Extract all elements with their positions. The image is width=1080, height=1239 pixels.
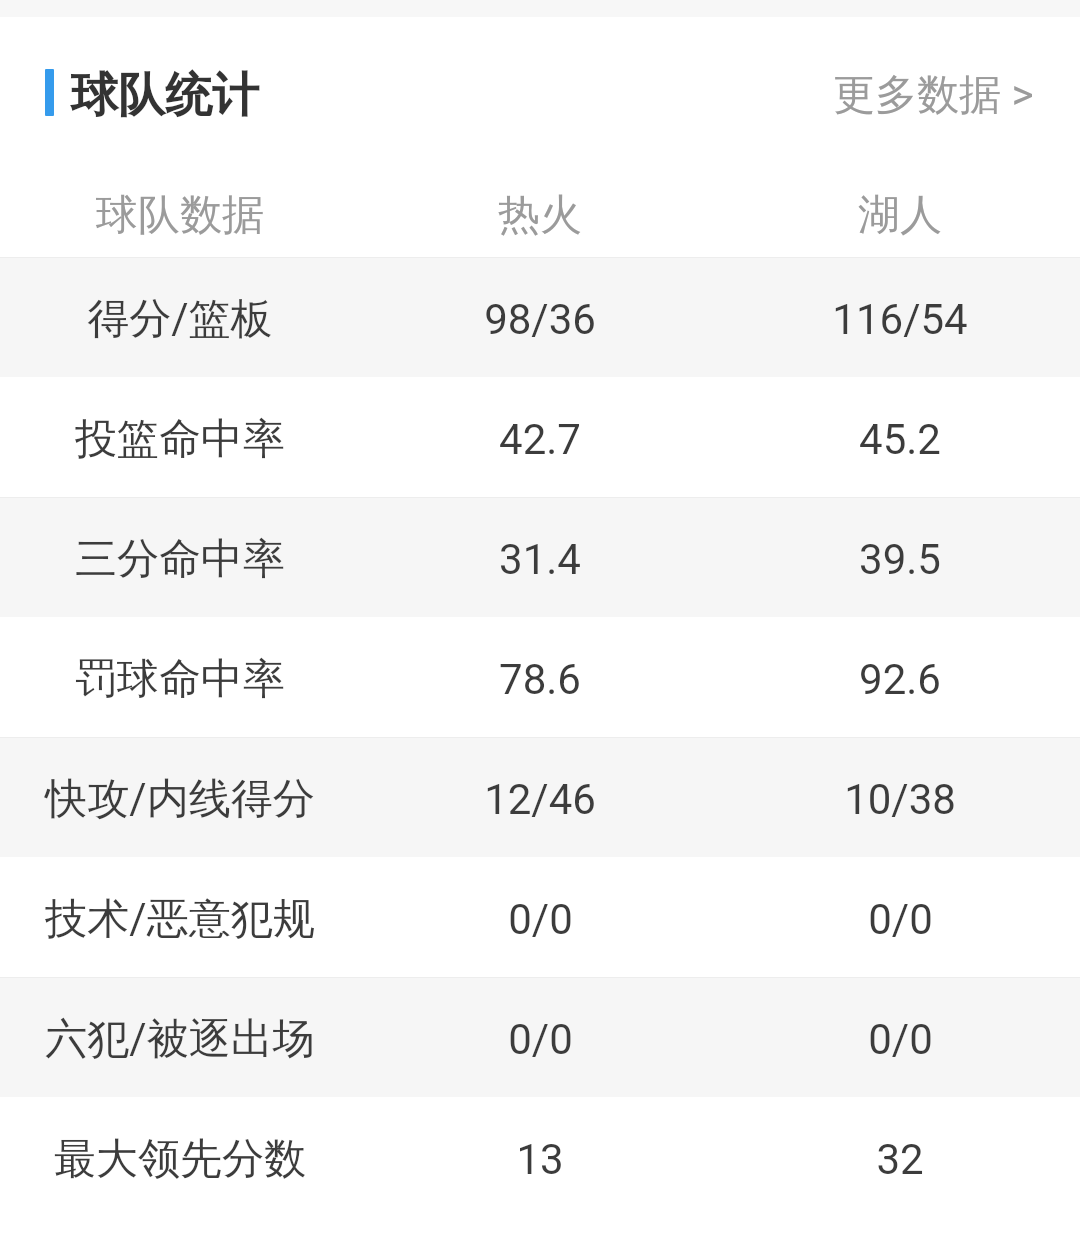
button[interactable]: 球队统计 bbox=[0, 17, 279, 170]
staticText: 湖人 bbox=[858, 189, 942, 242]
staticText: 最大领先分数 bbox=[54, 1133, 306, 1186]
button[interactable]: 快攻/内线得分 bbox=[0, 738, 1080, 857]
button[interactable]: 得分/篮板 bbox=[0, 258, 1080, 377]
staticText: 得分/篮板 bbox=[87, 293, 273, 346]
staticText: 0/0 bbox=[508, 895, 573, 944]
staticText: 三分命中率 bbox=[75, 533, 285, 586]
staticText: 0/0 bbox=[508, 1015, 573, 1064]
staticText: 热火 bbox=[498, 189, 582, 242]
button[interactable]: 三分命中率 bbox=[0, 498, 1080, 617]
staticText: 六犯/被逐出场 bbox=[45, 1013, 315, 1066]
staticText: 116/54 bbox=[832, 295, 968, 344]
staticText: 42.7 bbox=[499, 415, 581, 464]
staticText: 0/0 bbox=[868, 1015, 933, 1064]
staticText: 32 bbox=[876, 1135, 924, 1184]
staticText: 45.2 bbox=[859, 415, 941, 464]
button[interactable]: 技术/恶意犯规 bbox=[0, 857, 1080, 977]
staticText: 92.6 bbox=[859, 655, 941, 704]
button[interactable]: 罚球命中率 bbox=[0, 617, 1080, 737]
staticText: 球队数据 bbox=[96, 189, 264, 242]
staticText: 更多数据 > bbox=[833, 69, 1034, 122]
button[interactable]: 六犯/被逐出场 bbox=[0, 978, 1080, 1097]
button[interactable]: 投篮命中率 bbox=[0, 377, 1080, 497]
button[interactable]: 更多数据 > bbox=[803, 17, 1080, 170]
staticText: 78.6 bbox=[499, 655, 581, 704]
staticText: 39.5 bbox=[859, 535, 941, 584]
staticText: 31.4 bbox=[499, 535, 581, 584]
staticText: 快攻/内线得分 bbox=[45, 773, 315, 826]
staticText: 98/36 bbox=[484, 295, 596, 344]
staticText: 0/0 bbox=[868, 895, 933, 944]
staticText: 13 bbox=[516, 1135, 564, 1184]
staticText: 球队统计 bbox=[71, 66, 259, 125]
staticText: 12/46 bbox=[484, 775, 596, 824]
staticText: 技术/恶意犯规 bbox=[45, 893, 315, 946]
staticText: 投篮命中率 bbox=[75, 413, 285, 466]
button[interactable]: 最大领先分数 bbox=[0, 1097, 1080, 1217]
staticText: 10/38 bbox=[844, 775, 956, 824]
staticText: 罚球命中率 bbox=[75, 653, 285, 706]
